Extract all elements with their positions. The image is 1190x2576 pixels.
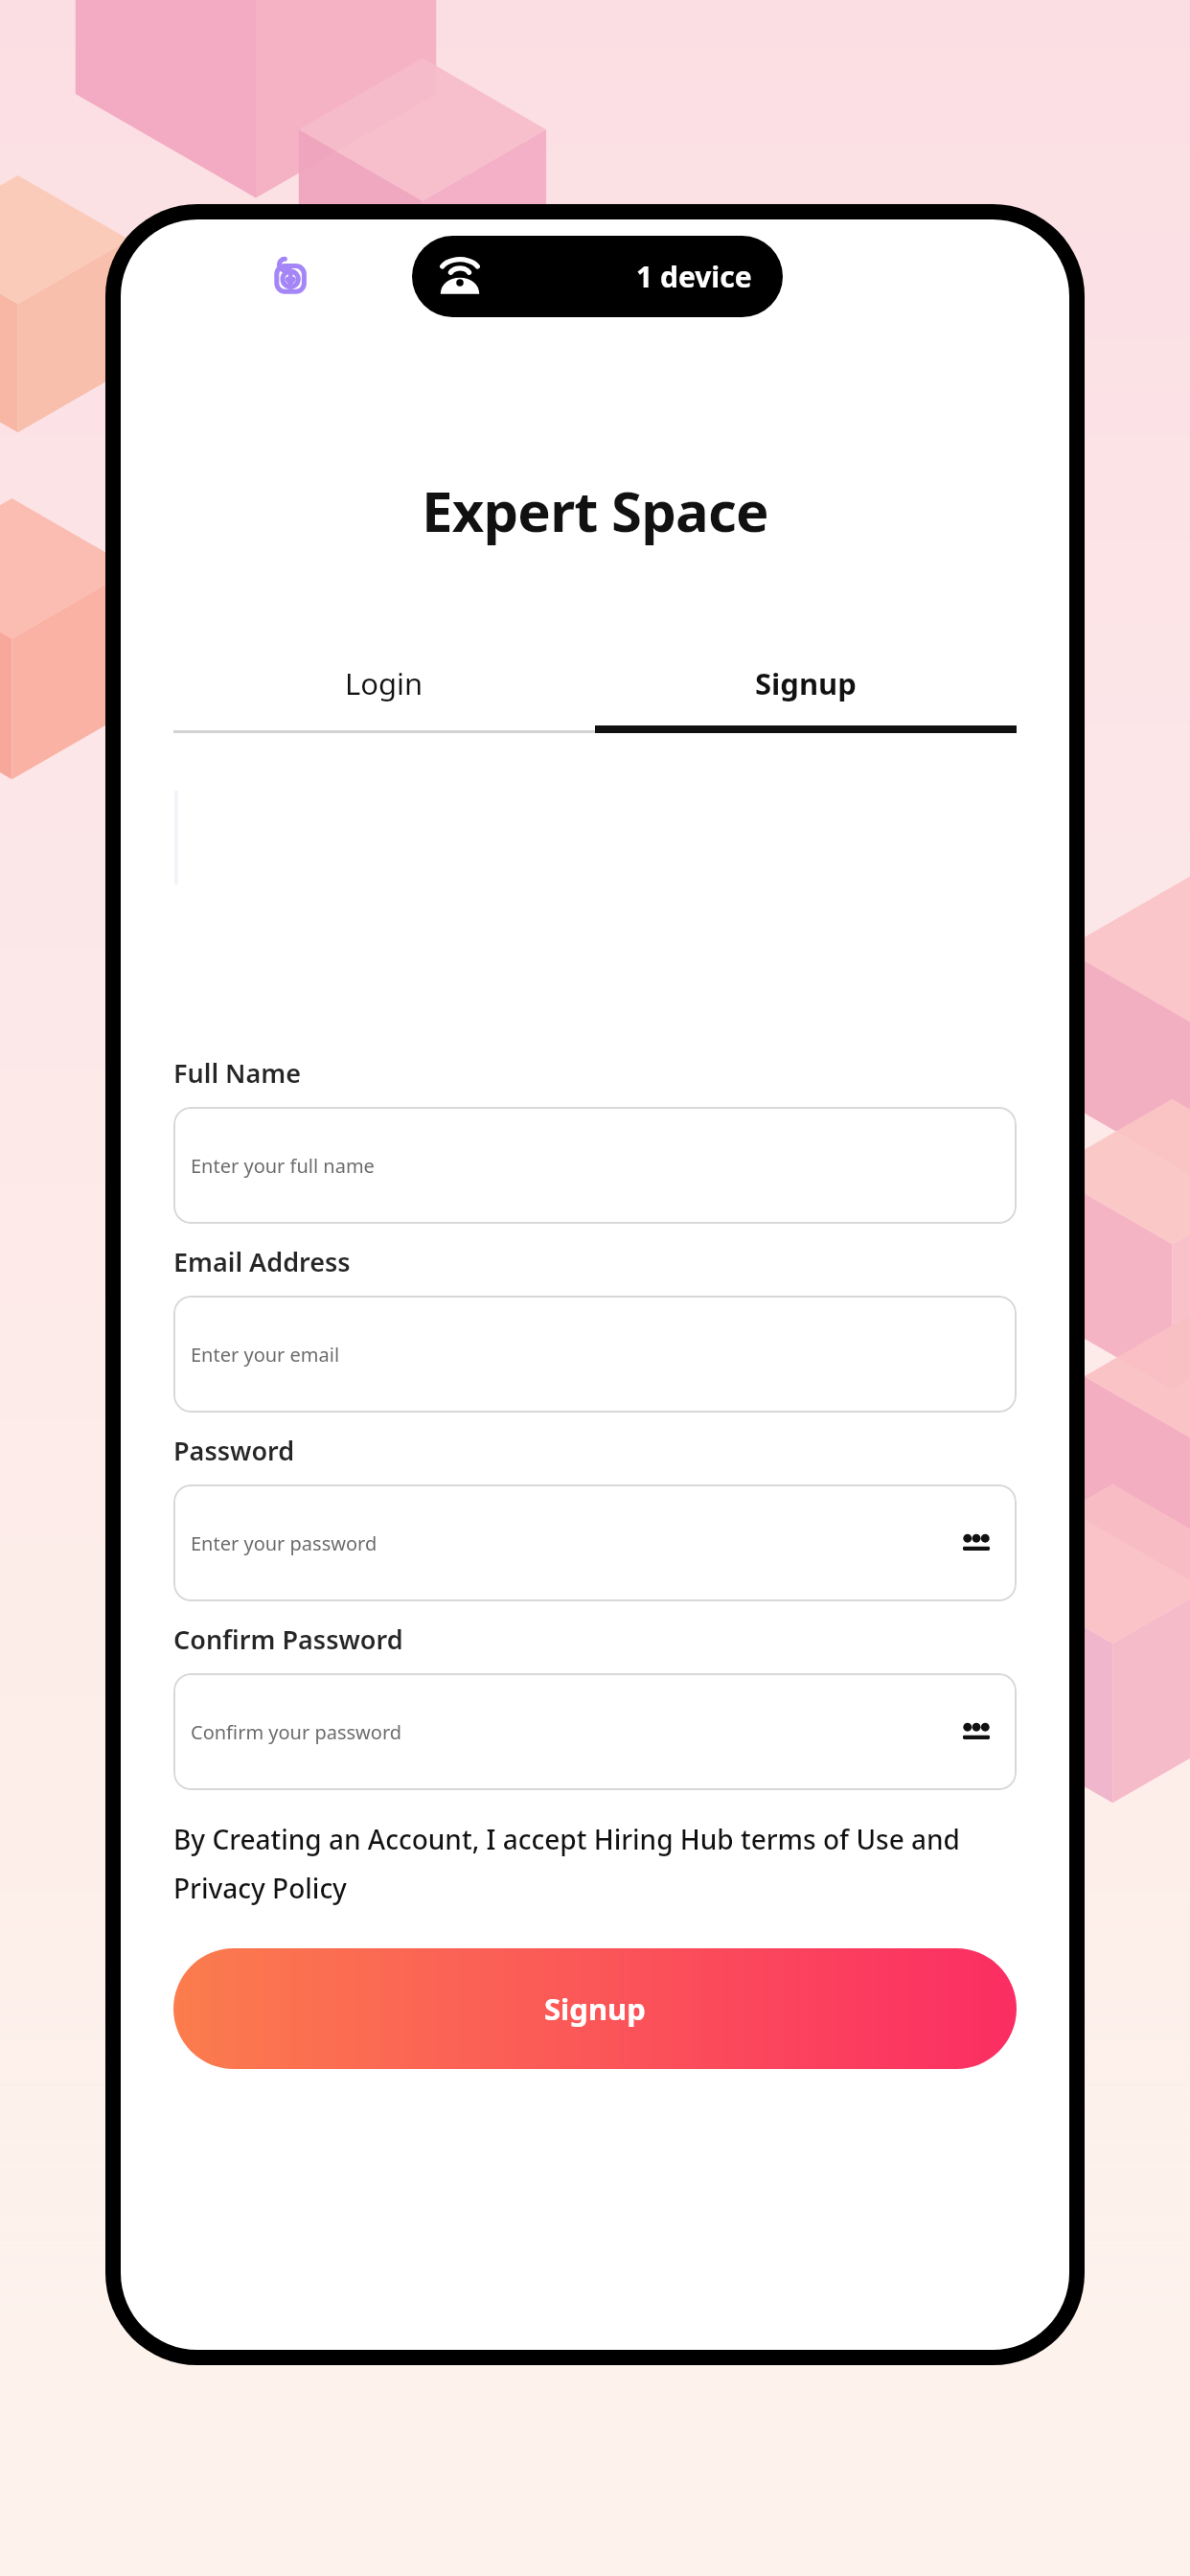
button[interactable]: Enter your email <box>173 1296 1017 1413</box>
staticText: Password <box>173 1433 295 1468</box>
button[interactable]: Confirm your password <box>173 1673 1017 1790</box>
staticText: Expert Space <box>422 472 768 548</box>
staticText: Signup <box>755 663 857 703</box>
button[interactable]: Show password <box>955 1711 997 1753</box>
staticText: By Creating an Account, I accept Hiring … <box>173 1821 1017 1906</box>
button[interactable]: Enter your password <box>173 1484 1017 1601</box>
button[interactable]: 1 device <box>412 236 783 317</box>
staticText: Full Name <box>173 1055 301 1091</box>
staticText: Enter your password <box>191 1530 378 1556</box>
button[interactable]: Enter your full name <box>173 1107 1017 1224</box>
button[interactable]: Show password <box>955 1522 997 1564</box>
staticText: Enter your full name <box>191 1153 375 1179</box>
staticText: 1 device <box>636 257 752 296</box>
button[interactable]: App badge <box>269 256 311 298</box>
button[interactable]: Signup <box>595 641 1017 725</box>
staticText: Enter your email <box>191 1342 340 1368</box>
staticText: Login <box>345 663 423 703</box>
button[interactable]: Signup <box>173 1948 1017 2069</box>
staticText: Email Address <box>173 1244 351 1279</box>
staticText: Confirm Password <box>173 1621 403 1657</box>
staticText: Signup <box>544 1989 646 2029</box>
staticText: Confirm your password <box>191 1719 402 1745</box>
button[interactable]: Login <box>173 641 595 725</box>
